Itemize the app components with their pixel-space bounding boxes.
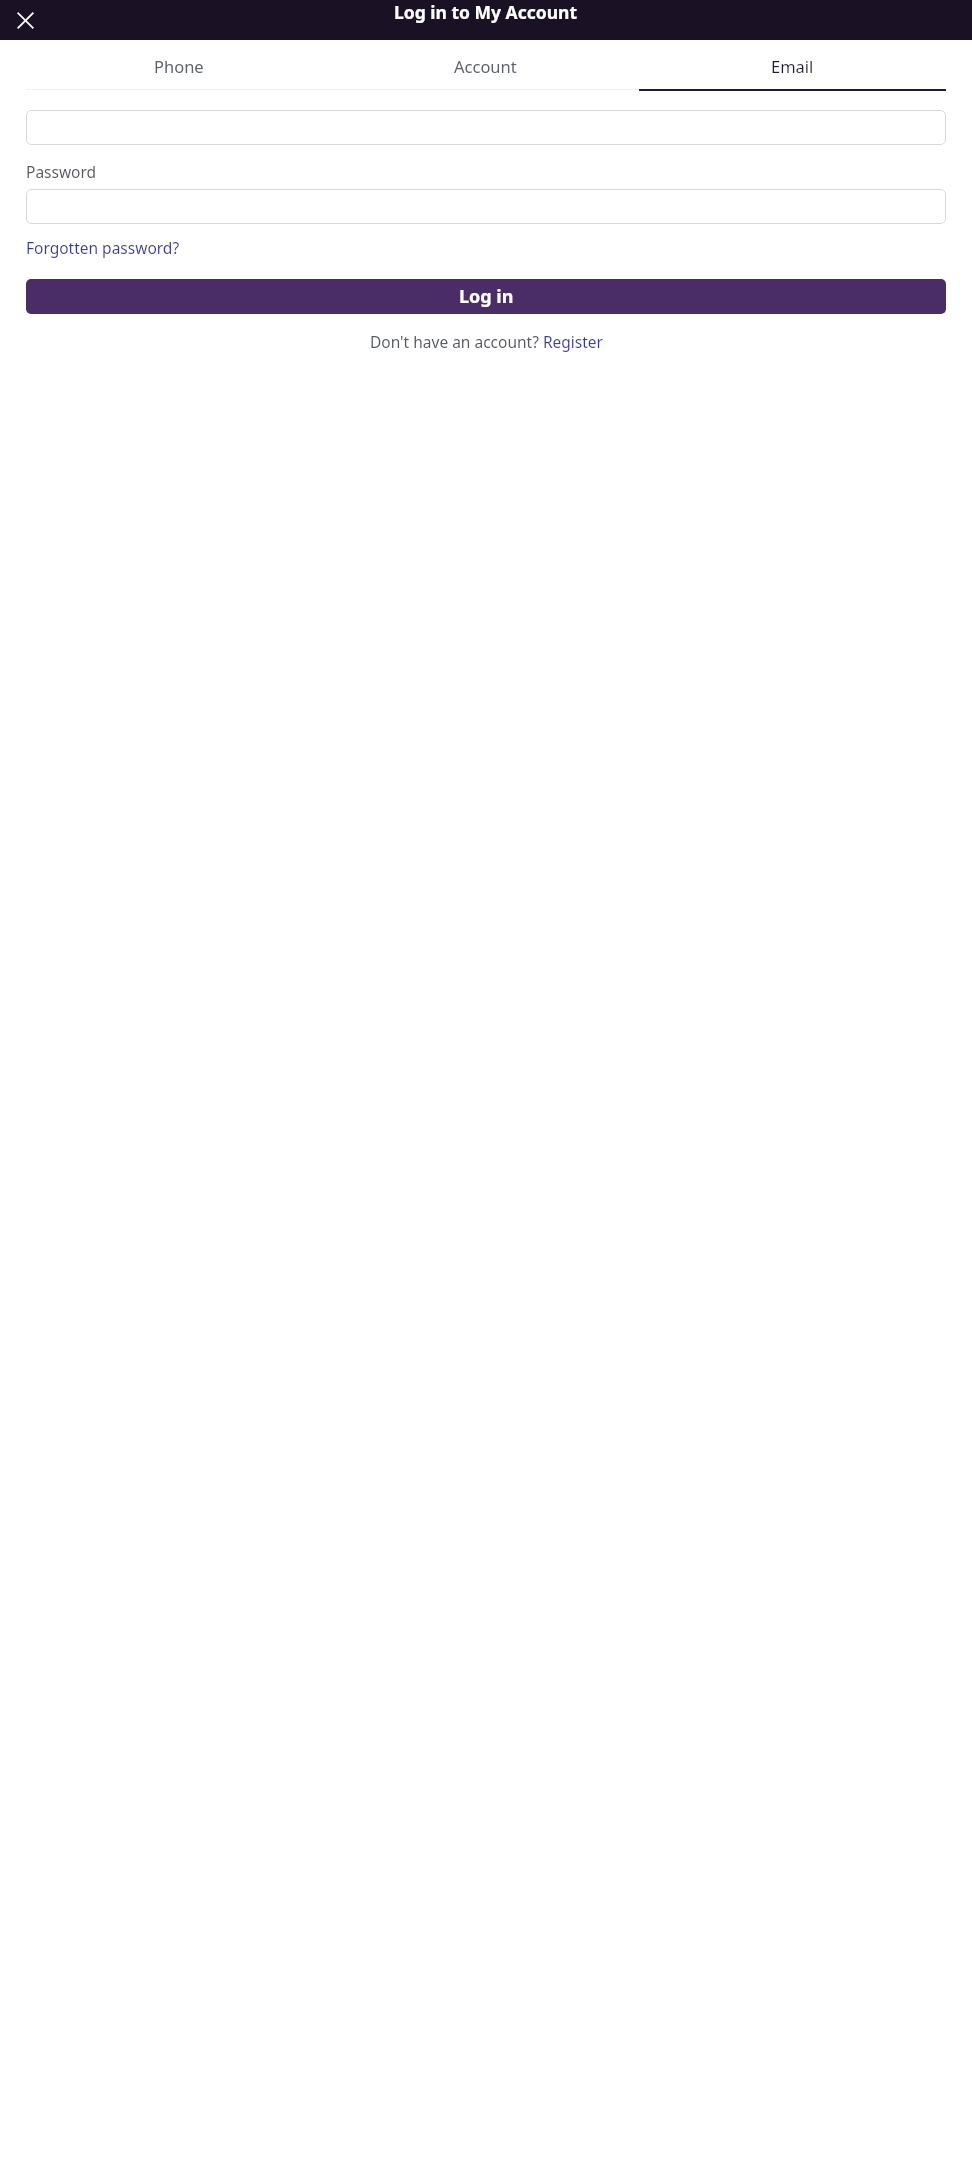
button[interactable]: Log in xyxy=(26,279,946,314)
staticText: Log in to My Account xyxy=(394,0,578,24)
staticText: Account xyxy=(454,55,517,77)
staticText: Forgotten password? xyxy=(26,237,180,258)
button[interactable]: Text field xyxy=(26,110,946,145)
button[interactable]: Don't have an account? Register xyxy=(370,329,603,354)
staticText: Password xyxy=(26,161,97,182)
button[interactable]: Close xyxy=(6,1,44,39)
button[interactable]: Phone xyxy=(26,50,332,90)
staticText: Email xyxy=(771,55,814,77)
button[interactable]: Text field xyxy=(26,189,946,224)
button[interactable]: Email xyxy=(639,50,946,91)
staticText: Phone xyxy=(154,55,204,77)
staticText: Log in xyxy=(459,284,514,309)
staticText: Don't have an account? Register xyxy=(370,331,603,352)
button[interactable]: Account xyxy=(332,50,639,90)
button[interactable]: Forgotten password? xyxy=(26,235,180,260)
